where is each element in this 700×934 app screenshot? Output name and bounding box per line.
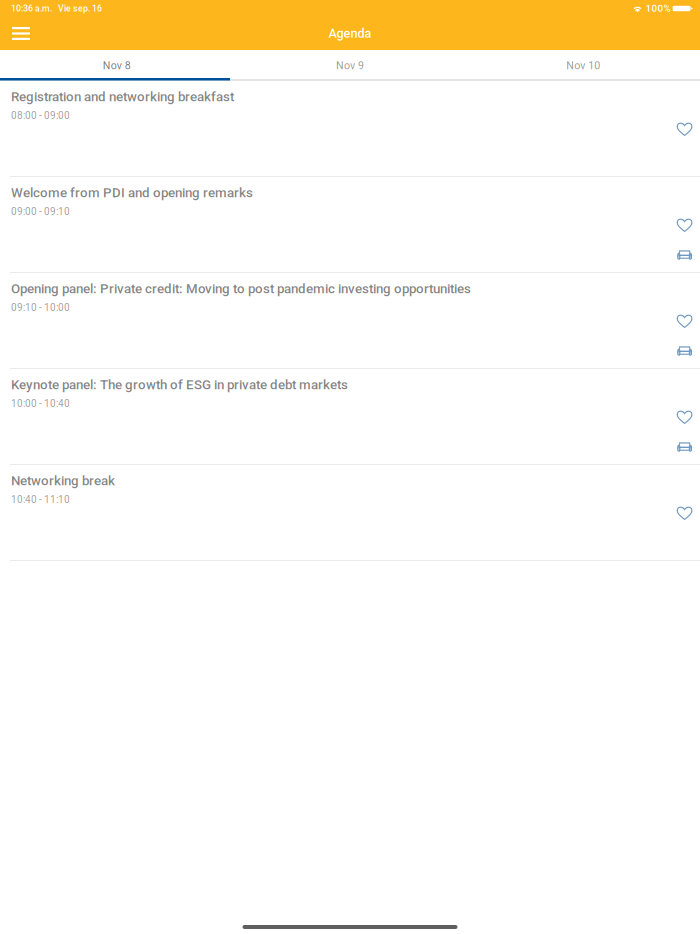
button[interactable]: Opening panel: Private credit: Moving to… (0, 273, 700, 368)
button[interactable]: Nov 10 (467, 50, 700, 80)
staticText: Keynote panel: The growth of ESG in priv… (11, 377, 348, 393)
staticText: 09:10 - 10:00 (11, 302, 70, 313)
staticText: 10:36 a.m. Vie sep. 16 (11, 3, 102, 14)
button[interactable]: Menu (4, 17, 38, 50)
button[interactable]: Nov 8 (0, 50, 233, 80)
staticText: 10:00 - 10:40 (11, 398, 70, 409)
staticText: 09:00 - 09:10 (11, 206, 70, 217)
button[interactable]: Keynote panel: The growth of ESG in priv… (0, 369, 700, 464)
staticText: Nov 8 (103, 59, 131, 72)
staticText: Nov 9 (336, 59, 364, 72)
button[interactable]: Welcome from PDI and opening remarks (0, 177, 700, 272)
button[interactable]: Networking break (0, 465, 700, 560)
staticText: Welcome from PDI and opening remarks (11, 185, 253, 201)
staticText: 100% (646, 3, 671, 14)
staticText: Networking break (11, 473, 115, 489)
staticText: Nov 10 (566, 59, 600, 72)
staticText: Opening panel: Private credit: Moving to… (11, 281, 471, 297)
button[interactable]: Registration and networking breakfast (0, 81, 700, 176)
staticText: 08:00 - 09:00 (11, 110, 70, 121)
staticText: Agenda (328, 26, 371, 41)
button[interactable]: Nov 9 (233, 50, 467, 80)
staticText: 10:40 - 11:10 (11, 494, 70, 505)
staticText: Registration and networking breakfast (11, 89, 234, 105)
